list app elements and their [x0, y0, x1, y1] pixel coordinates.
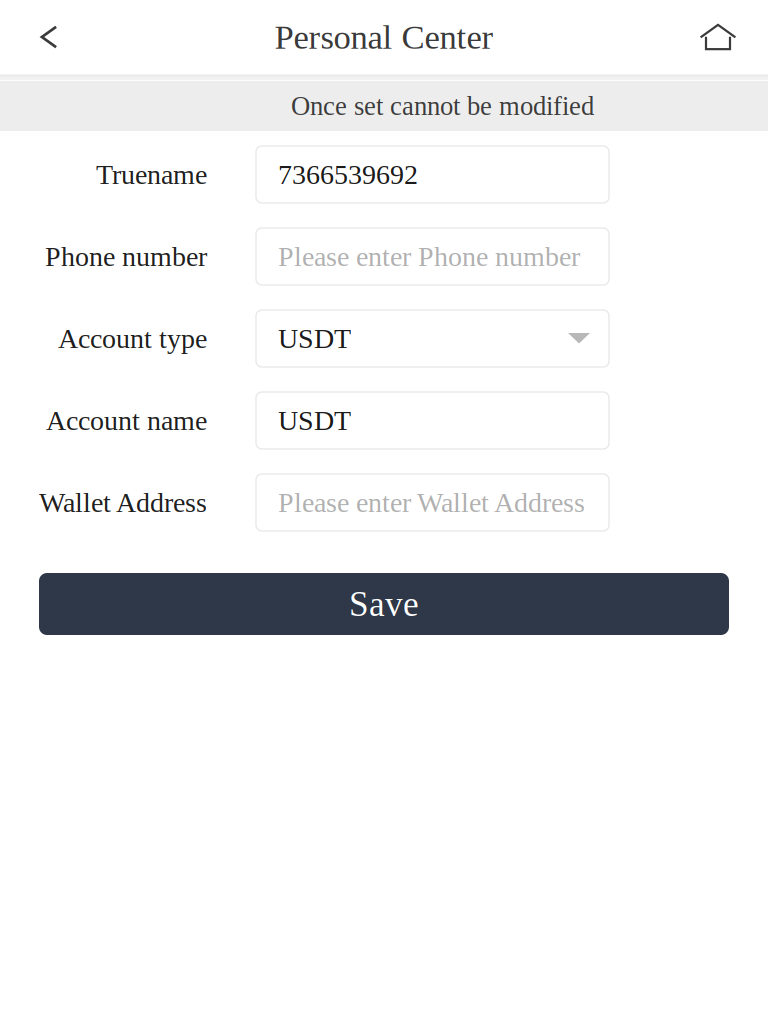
staticText: Please enter Phone number — [278, 241, 580, 272]
staticText: Account type — [58, 323, 207, 354]
staticText: Truename — [96, 159, 207, 190]
button[interactable]: Account name — [256, 392, 609, 449]
staticText: USDT — [278, 405, 351, 436]
button[interactable]: Account type — [256, 310, 609, 367]
button[interactable]: Back — [20, 8, 78, 66]
staticText: 7366539692 — [278, 159, 418, 190]
button[interactable]: Home — [689, 8, 747, 66]
staticText: Save — [349, 584, 419, 623]
staticText: Personal Center — [274, 18, 493, 56]
button[interactable]: Phone number — [256, 228, 609, 285]
button[interactable]: Save — [39, 573, 729, 635]
button[interactable]: Truename — [256, 146, 609, 203]
button[interactable]: Wallet Address — [256, 474, 609, 531]
staticText: Phone number — [45, 241, 207, 272]
staticText: Please enter Wallet Address — [278, 487, 585, 518]
staticText: USDT — [278, 323, 351, 354]
staticText: Wallet Address — [39, 487, 207, 518]
staticText: Once set cannot be modified — [291, 91, 594, 121]
staticText: Account name — [46, 405, 207, 436]
